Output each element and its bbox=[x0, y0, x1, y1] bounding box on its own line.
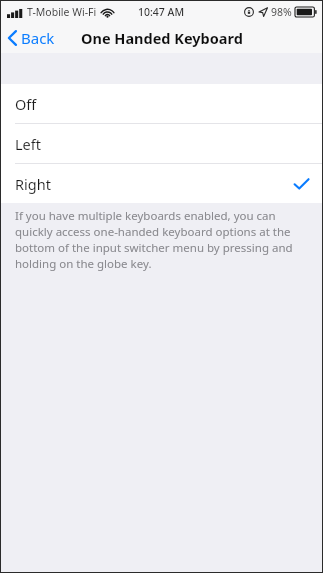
staticText: Left bbox=[15, 134, 41, 154]
staticText: Off bbox=[15, 94, 37, 114]
staticText: 98% bbox=[271, 5, 292, 19]
button[interactable]: Left bbox=[1, 124, 322, 163]
staticText: Back bbox=[21, 28, 55, 48]
button[interactable]: Right bbox=[1, 164, 322, 203]
staticText: If you have multiple keyboards enabled, … bbox=[15, 208, 306, 272]
staticText: Right bbox=[15, 174, 51, 194]
button[interactable]: Back bbox=[1, 22, 63, 53]
button[interactable]: Off bbox=[1, 84, 322, 123]
staticText: One Handed Keyboard bbox=[81, 28, 243, 48]
staticText: T-Mobile Wi-Fi bbox=[27, 5, 97, 19]
staticText: 10:47 AM bbox=[138, 5, 185, 19]
